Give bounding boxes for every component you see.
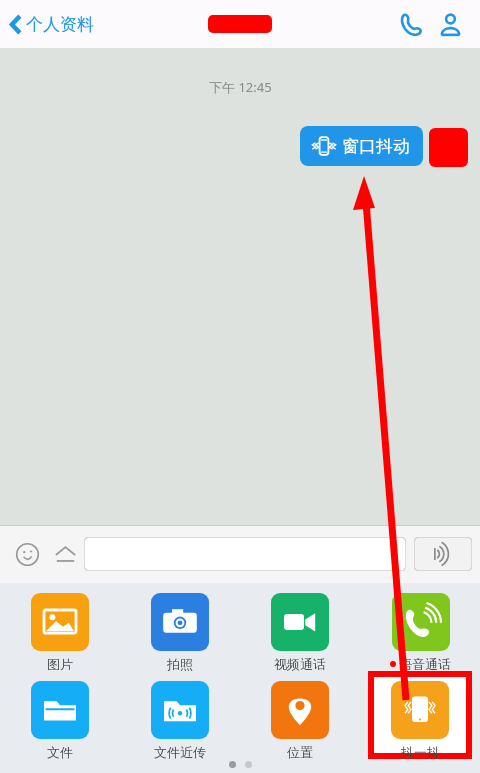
staticText: 文件 (47, 744, 73, 759)
button[interactable]: 抖一抖 (391, 681, 449, 759)
button[interactable]: 输入消息 (84, 537, 406, 571)
staticText: 视频通话 (274, 656, 326, 671)
button[interactable]: 语音通话 (390, 4, 430, 44)
button[interactable]: 文件近传 (151, 681, 209, 759)
button[interactable]: 语音输入 (414, 537, 472, 571)
button[interactable]: 个人资料 (430, 4, 470, 44)
button[interactable]: 文件 (31, 681, 89, 759)
staticText: 文件近传 (154, 744, 206, 759)
staticText: 下午 12:45 (209, 78, 272, 96)
staticText: 拍照 (167, 656, 193, 671)
button[interactable]: 收起面板 (46, 535, 84, 573)
staticText: 个人资料 (26, 14, 94, 35)
button[interactable]: 表情 (8, 535, 46, 573)
button[interactable]: 拍照 (151, 593, 209, 671)
button[interactable]: 窗口抖动 (300, 126, 423, 166)
button[interactable]: 位置 (271, 681, 329, 759)
button[interactable]: 视频通话 (271, 593, 329, 671)
button[interactable]: 语音通话 (390, 593, 451, 671)
staticText: 图片 (47, 656, 73, 671)
staticText: 抖一抖 (401, 744, 440, 759)
staticText: 窗口抖动 (342, 136, 410, 157)
button[interactable]: 图片 (31, 593, 89, 671)
staticText: 位置 (287, 744, 313, 759)
button[interactable]: 个人资料 (0, 8, 102, 41)
staticText: 语音通话 (399, 656, 451, 671)
